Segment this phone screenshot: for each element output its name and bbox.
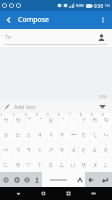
button[interactable]: ㄖ: [46, 157, 57, 172]
button[interactable]: To: [0, 29, 112, 44]
staticText: 94%: [76, 3, 85, 9]
button[interactable]: ㄘ: [57, 142, 68, 157]
button[interactable]: Tone: [75, 172, 85, 187]
button[interactable]: ˙: [68, 113, 79, 127]
button[interactable]: ㄊ: [12, 127, 24, 142]
button[interactable]: Add text: [0, 100, 112, 113]
button[interactable]: ㄙ: [57, 157, 68, 172]
staticText: ㄉ: [15, 116, 22, 124]
button[interactable]: ㄔ: [46, 127, 57, 142]
staticText: ˙: [73, 116, 75, 124]
staticText: 6: [58, 113, 60, 117]
button[interactable]: ㄇ: [0, 142, 12, 157]
staticText: ㄤ: [103, 146, 110, 154]
button[interactable]: Change language: [22, 172, 32, 187]
button[interactable]: More options: [94, 11, 112, 29]
button[interactable]: ㄥ: [101, 157, 112, 172]
staticText: ㄍ: [26, 131, 33, 139]
button[interactable]: ㄣ: [101, 127, 112, 142]
staticText: ㄘ: [59, 146, 66, 154]
button[interactable]: Keyboard: [87, 187, 100, 200]
button[interactable]: ㄅ: [0, 113, 12, 127]
staticText: 0: [102, 113, 104, 117]
button[interactable]: ˇ: [24, 113, 35, 127]
button[interactable]: ㄏ: [24, 157, 35, 172]
button[interactable]: Recents: [62, 187, 75, 200]
staticText: ㄛ: [81, 131, 88, 139]
button[interactable]: Send: [97, 101, 108, 112]
staticText: 2: [13, 113, 15, 117]
staticText: ㄕ: [48, 146, 55, 154]
button[interactable]: ㄉ: [12, 113, 24, 127]
staticText: ㄜ: [81, 146, 88, 154]
button[interactable]: Symbols: [0, 172, 11, 187]
button[interactable]: ㄐ: [35, 127, 46, 142]
button[interactable]: ㄍ: [24, 127, 35, 142]
button[interactable]: ㄞ: [90, 113, 101, 127]
button[interactable]: ㄑ: [35, 142, 46, 157]
button[interactable]: ㄢ: [101, 113, 112, 127]
button[interactable]: Back: [0, 11, 18, 29]
button[interactable]: ㄎ: [24, 142, 35, 157]
button[interactable]: ㄩ: [68, 157, 79, 172]
button[interactable]: Space: [42, 172, 75, 187]
staticText: ㄔ: [48, 131, 55, 139]
staticText: ㄠ: [92, 146, 99, 154]
staticText: ㄩ: [70, 161, 77, 169]
button[interactable]: ㄋ: [12, 142, 24, 157]
staticText: To: [5, 33, 12, 40]
staticText: ㄇ: [3, 146, 10, 154]
button[interactable]: ㄓ: [46, 113, 57, 127]
button[interactable]: Pick contact: [95, 31, 107, 43]
staticText: ㄢ: [103, 116, 110, 124]
staticText: 9: [91, 113, 93, 117]
button[interactable]: ㄝ: [79, 157, 90, 172]
staticText: ㄎ: [26, 146, 33, 154]
button[interactable]: ㄌ: [12, 157, 24, 172]
staticText: 7: [69, 113, 71, 117]
button[interactable]: ㄛ: [79, 127, 90, 142]
staticText: ˇ: [28, 116, 31, 124]
staticText: PM: [105, 4, 110, 8]
button[interactable]: ㄜ: [79, 142, 90, 157]
button[interactable]: ㄟ: [90, 127, 101, 142]
button[interactable]: Hide keyboard: [12, 187, 25, 200]
button[interactable]: Enter: [97, 172, 112, 187]
staticText: ㄣ: [103, 131, 110, 139]
button[interactable]: Backspace: [85, 172, 97, 187]
button[interactable]: ㄗ: [57, 127, 68, 142]
staticText: 9:30: [94, 3, 104, 9]
staticText: ㄆ: [3, 131, 10, 139]
staticText: ㄊ: [15, 131, 22, 139]
button[interactable]: ㄡ: [90, 157, 101, 172]
staticText: 0/160: [99, 95, 107, 99]
button[interactable]: ㄤ: [101, 142, 112, 157]
staticText: ㄏ: [26, 161, 33, 169]
button[interactable]: ㄚ: [79, 113, 90, 127]
staticText: ㄟ: [92, 131, 99, 139]
staticText: 5: [47, 113, 49, 117]
staticText: ㄌ: [15, 161, 22, 169]
staticText: 一: [71, 131, 77, 139]
button[interactable]: ˊ: [57, 113, 68, 127]
button[interactable]: Home: [37, 187, 50, 200]
staticText: ˊ: [62, 116, 64, 124]
button[interactable]: 一: [68, 127, 79, 142]
button[interactable]: Settings: [11, 172, 22, 187]
staticText: ㄈ: [3, 161, 10, 169]
staticText: ㄙ: [59, 161, 66, 169]
staticText: 4: [36, 113, 38, 117]
staticText: Add text: [14, 103, 36, 110]
button[interactable]: ˋ: [35, 113, 46, 127]
button[interactable]: Voice input: [32, 172, 42, 187]
staticText: ㄖ: [48, 161, 55, 169]
button[interactable]: ㄨ: [68, 142, 79, 157]
staticText: 1: [1, 113, 3, 117]
button[interactable]: ㄕ: [46, 142, 57, 157]
staticText: ㄅ: [3, 116, 10, 124]
staticText: ㄞ: [92, 116, 99, 124]
button[interactable]: ㄒ: [35, 157, 46, 172]
button[interactable]: ㄠ: [90, 142, 101, 157]
button[interactable]: ㄈ: [0, 157, 12, 172]
button[interactable]: ㄆ: [0, 127, 12, 142]
